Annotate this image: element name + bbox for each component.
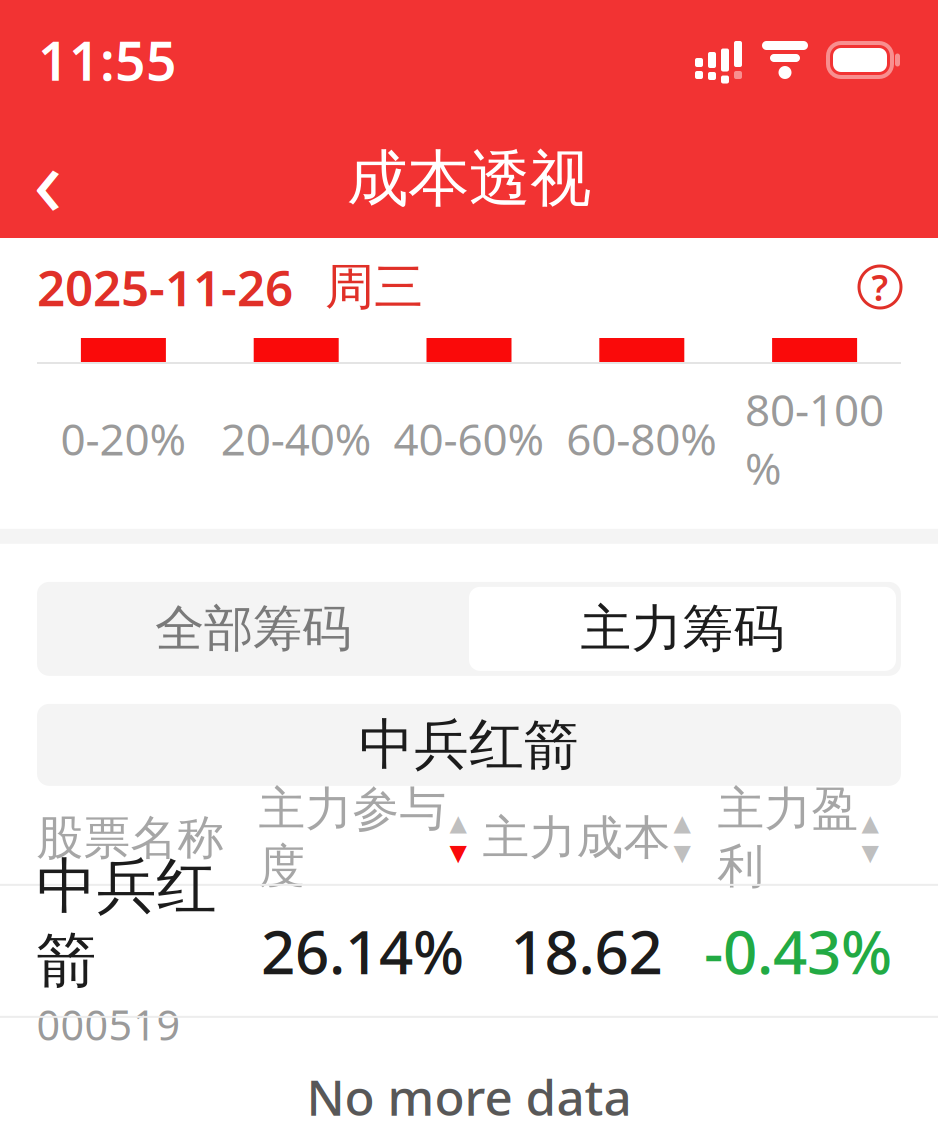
button[interactable]: 主力盈利: [694, 780, 901, 895]
button[interactable]: 中兵红箭: [0, 886, 937, 1016]
staticText: 周三: [325, 257, 423, 317]
staticText: ▲: [673, 810, 690, 836]
button[interactable]: 主力参与度: [246, 780, 478, 895]
staticText: ▼: [673, 840, 690, 866]
staticText: ▲: [449, 810, 466, 836]
staticText: 000519: [36, 997, 180, 1052]
staticText: 中兵红箭: [36, 850, 216, 997]
staticText: 中兵红箭: [359, 711, 579, 778]
staticText: 18.62: [510, 911, 662, 991]
button[interactable]: 主力成本: [478, 809, 694, 866]
staticText: 26.14%: [261, 911, 464, 991]
staticText: 40-60%: [393, 409, 544, 468]
staticText: ?: [871, 263, 888, 311]
button[interactable]: 2025-11-26: [37, 244, 423, 330]
staticText: 60-80%: [566, 409, 717, 468]
staticText: ▼: [861, 840, 878, 866]
staticText: ▼: [449, 840, 466, 866]
button[interactable]: Help: [859, 266, 901, 308]
staticText: 11:55: [38, 25, 177, 95]
staticText: 2025-11-26: [37, 254, 293, 320]
staticText: 成本透视: [347, 141, 591, 217]
staticText: 20-40%: [221, 409, 372, 468]
staticText: 全部筹码: [155, 599, 351, 659]
staticText: 0-20%: [60, 409, 186, 468]
button[interactable]: 主力筹码: [469, 582, 901, 676]
staticText: 主力参与度: [258, 780, 446, 895]
staticText: 主力盈利: [717, 780, 858, 895]
button[interactable]: 中兵红箭: [37, 704, 901, 786]
staticText: 股票名称: [36, 809, 224, 866]
staticText: -0.43%: [704, 911, 892, 991]
staticText: 80-100%: [745, 380, 884, 497]
staticText: No more data: [306, 1064, 631, 1129]
staticText: 主力成本: [482, 809, 670, 866]
staticText: ▲: [861, 810, 878, 836]
staticText: ‹: [33, 115, 63, 243]
staticText: 主力筹码: [580, 598, 784, 660]
button[interactable]: 全部筹码: [37, 582, 469, 676]
button[interactable]: Back: [0, 131, 96, 227]
